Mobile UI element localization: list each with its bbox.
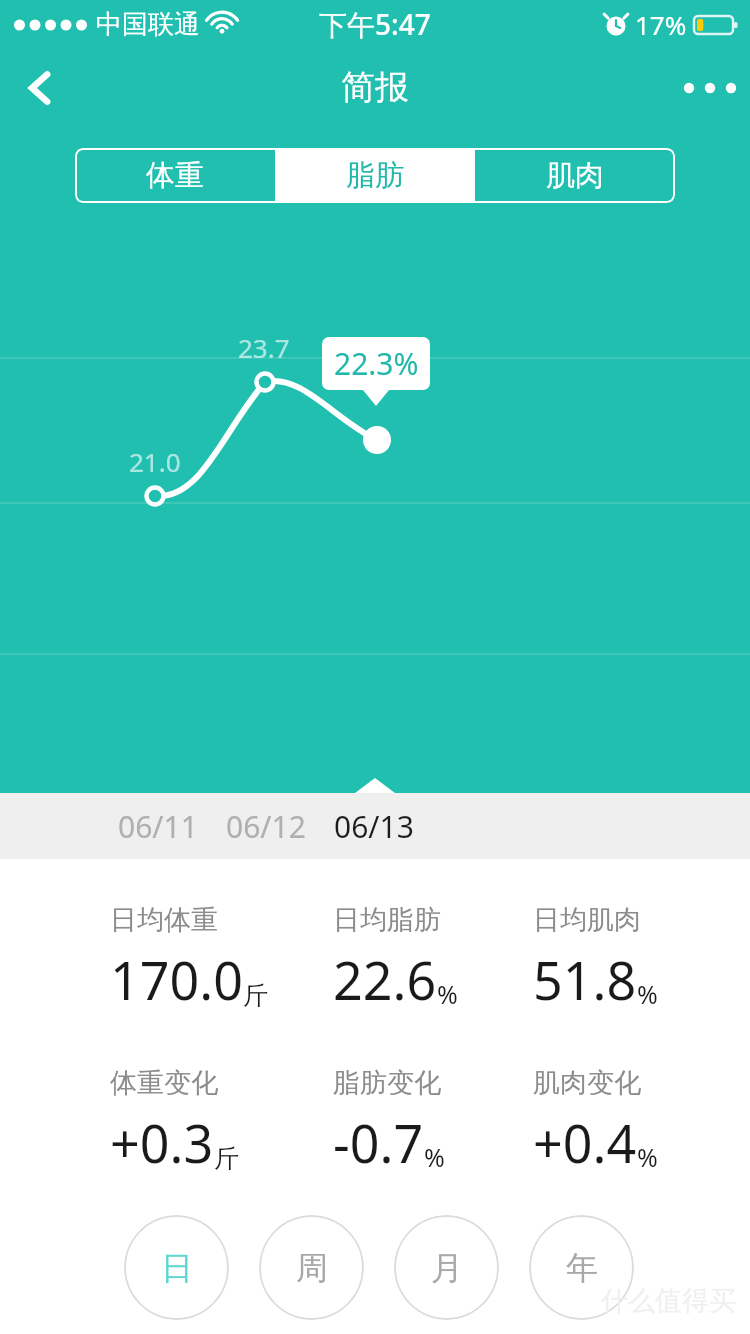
staticText: 22.6: [333, 944, 437, 1015]
staticText: 斤: [214, 1143, 239, 1174]
staticText: 肌肉变化: [533, 1066, 641, 1100]
staticText: 06/13: [334, 806, 414, 847]
staticText: 17%: [635, 7, 687, 42]
staticText: +0.3: [110, 1107, 214, 1178]
staticText: %: [637, 977, 658, 1011]
button[interactable]: 肌肉: [475, 148, 675, 203]
staticText: +0.4: [533, 1107, 637, 1178]
staticText: 日均体重: [110, 903, 218, 937]
staticText: 21.0: [129, 444, 181, 479]
button[interactable]: 06/11: [118, 800, 198, 853]
staticText: 日均脂肪: [333, 903, 441, 937]
staticText: %: [437, 977, 458, 1011]
button[interactable]: 周: [259, 1215, 364, 1320]
staticText: 22.3%: [334, 343, 419, 384]
staticText: 什么值得买: [601, 1284, 736, 1318]
staticText: 简报: [341, 66, 409, 109]
staticText: %: [637, 1140, 658, 1174]
staticText: 月: [431, 1248, 463, 1288]
button[interactable]: 脂肪: [275, 148, 475, 203]
staticText: 51.8: [533, 944, 637, 1015]
staticText: 06/11: [118, 806, 198, 847]
staticText: %: [424, 1140, 445, 1174]
staticText: 170.0: [110, 944, 243, 1015]
button[interactable]: 体重: [75, 148, 275, 203]
button[interactable]: Back: [0, 48, 80, 128]
staticText: -0.7: [333, 1107, 424, 1178]
button[interactable]: 月: [394, 1215, 499, 1320]
staticText: 脂肪: [346, 157, 404, 194]
staticText: 06/12: [226, 806, 306, 847]
button[interactable]: More options: [670, 48, 750, 128]
staticText: 23.7: [238, 330, 290, 365]
staticText: 脂肪变化: [333, 1066, 441, 1100]
staticText: 斤: [243, 980, 268, 1011]
staticText: 体重: [146, 157, 204, 194]
staticText: 下午5:47: [319, 5, 431, 43]
staticText: 周: [296, 1248, 328, 1288]
button[interactable]: 06/12: [226, 800, 306, 853]
button[interactable]: 年: [529, 1215, 634, 1320]
staticText: 日均肌肉: [533, 903, 641, 937]
staticText: 体重变化: [110, 1066, 218, 1100]
staticText: 日: [161, 1248, 193, 1288]
staticText: 肌肉: [546, 157, 604, 194]
staticText: 中国联通: [96, 8, 200, 41]
staticText: 年: [566, 1248, 598, 1288]
button[interactable]: 日: [124, 1215, 229, 1320]
button[interactable]: 06/13: [334, 800, 414, 853]
